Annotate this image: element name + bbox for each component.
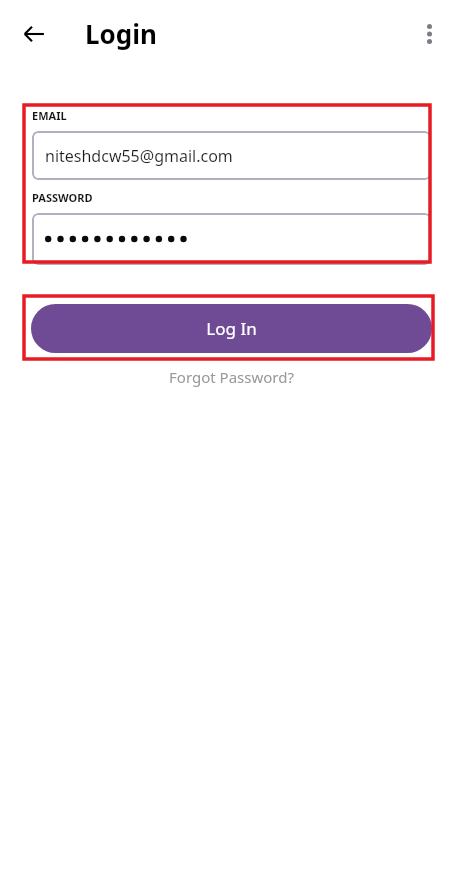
- staticText: niteshdcw55@gmail.com: [45, 145, 233, 167]
- button[interactable]: [32, 213, 431, 265]
- button[interactable]: Back: [14, 14, 54, 54]
- staticText: EMAIL: [32, 108, 67, 123]
- button[interactable]: Log In: [31, 304, 432, 353]
- staticText: Login: [85, 16, 157, 51]
- button[interactable]: Forgot Password?: [161, 364, 302, 390]
- staticText: PASSWORD: [32, 190, 93, 205]
- staticText: Forgot Password?: [169, 367, 294, 387]
- staticText: Log In: [206, 317, 257, 340]
- button[interactable]: niteshdcw55@gmail.com: [32, 131, 431, 180]
- button[interactable]: More options: [407, 12, 451, 56]
